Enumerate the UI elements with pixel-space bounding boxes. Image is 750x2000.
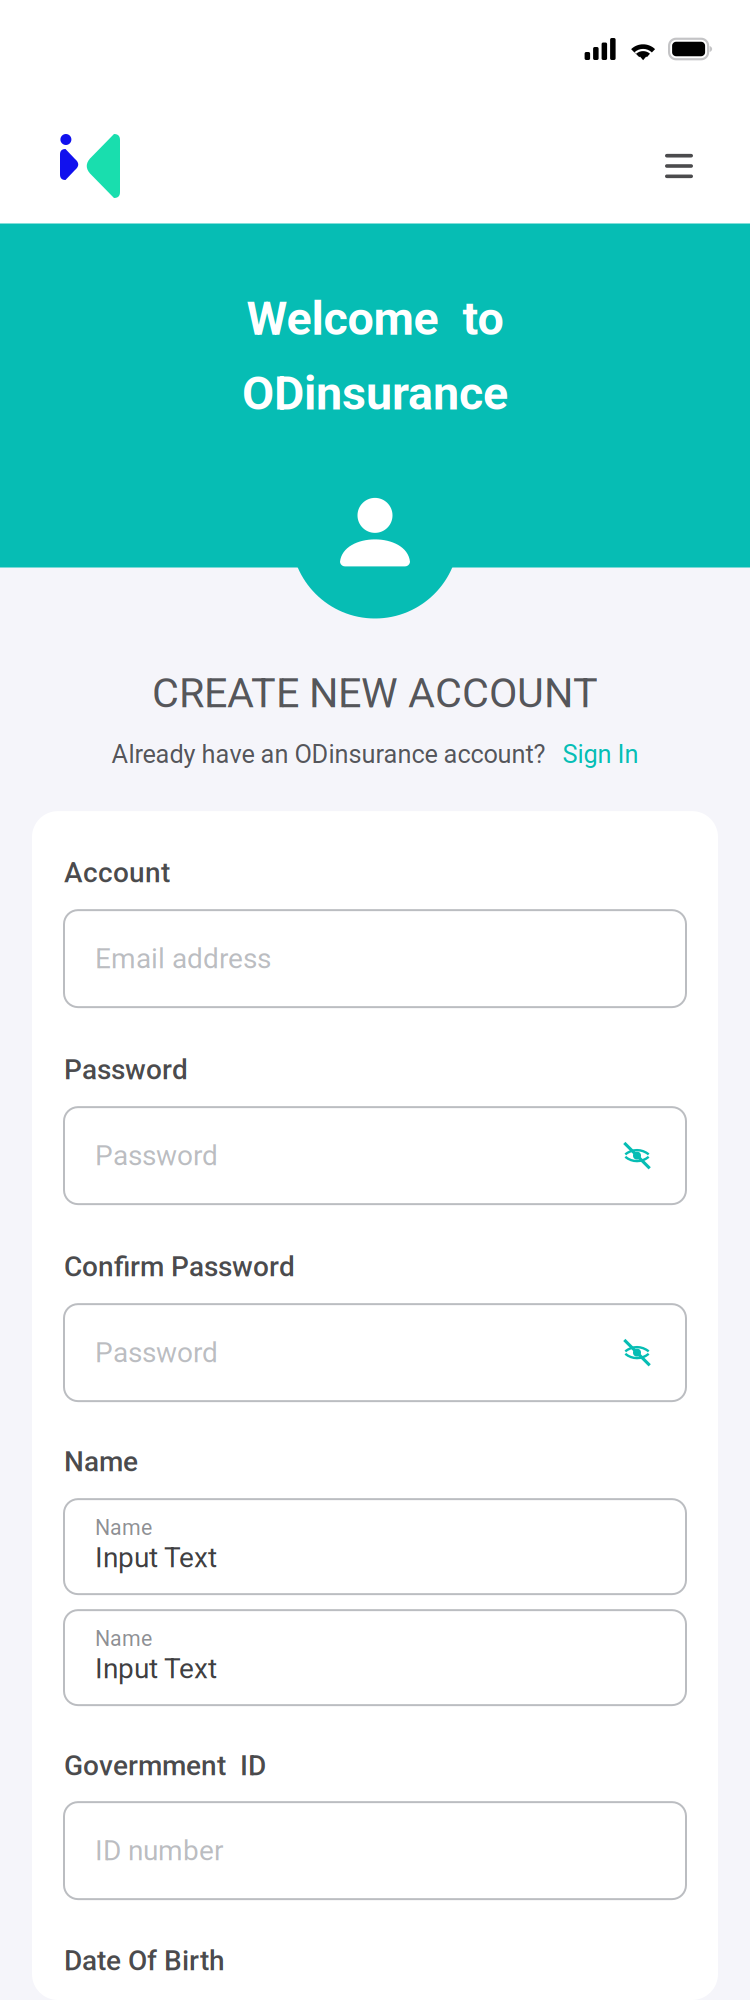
button[interactable]: Show password (615, 1134, 659, 1178)
staticText: Account (64, 856, 170, 889)
staticText: ODinsurance (242, 366, 508, 421)
staticText: Sign In (562, 739, 638, 769)
staticText: Govermment ID (64, 1749, 266, 1782)
staticText: CREATE NEW ACCOUNT (152, 669, 598, 717)
staticText: Name (95, 1626, 152, 1651)
staticText: Password (95, 1139, 218, 1172)
staticText: Input Text (95, 1652, 217, 1685)
staticText: Name (64, 1445, 138, 1478)
staticText: ID number (95, 1834, 223, 1867)
button[interactable]: Sign In (562, 739, 638, 769)
staticText: Password (64, 1053, 188, 1086)
staticText: Email address (95, 942, 271, 975)
staticText: Input Text (95, 1541, 217, 1574)
button[interactable]: Menu (650, 137, 708, 195)
staticText: Password (95, 1336, 218, 1369)
staticText: Already have an ODinsurance account? (111, 739, 545, 769)
button[interactable]: Show password (615, 1331, 659, 1375)
staticText: Confirm Password (64, 1250, 295, 1283)
staticText: Date Of Birth (64, 1944, 225, 1977)
staticText: Name (95, 1515, 152, 1540)
staticText: Welcome to (246, 291, 503, 346)
